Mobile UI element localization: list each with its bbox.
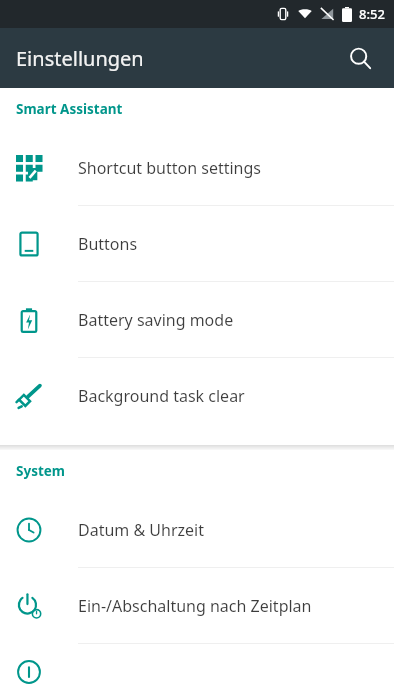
button[interactable]: Battery saving mode [0,282,394,358]
button[interactable] [0,644,394,700]
button[interactable]: Search [336,34,384,82]
button[interactable]: Datum & Uhrzeit [0,492,394,568]
staticText: Buttons [78,233,138,255]
button[interactable]: Background task clear [0,358,394,434]
staticText: Smart Assistant [16,100,123,118]
button[interactable]: Buttons [0,206,394,282]
staticText: Ein-/Abschaltung nach Zeitplan [78,595,312,617]
staticText: Background task clear [78,385,245,407]
staticText: 8:52 [359,5,385,23]
staticText: Datum & Uhrzeit [78,519,204,541]
button[interactable]: Ein-/Abschaltung nach Zeitplan [0,568,394,644]
staticText: Einstellungen [16,45,144,72]
staticText: Battery saving mode [78,309,234,331]
button[interactable]: Shortcut button settings [0,130,394,206]
staticText: System [16,462,66,480]
staticText: Shortcut button settings [78,157,262,179]
